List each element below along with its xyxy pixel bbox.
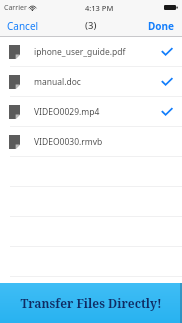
staticText: (3): [85, 19, 97, 32]
other: Selected: [162, 48, 172, 56]
staticText: 4:13 PM: [85, 3, 114, 13]
staticText: Transfer Files Directly!: [20, 295, 162, 311]
staticText: iphone_user_guide.pdf: [34, 46, 162, 58]
staticText: manual.doc: [34, 76, 162, 88]
button[interactable]: manual.doc: [0, 67, 182, 97]
other: Selected: [162, 108, 172, 116]
button[interactable]: VIDEO0029.mp4: [0, 97, 182, 127]
staticText: Done: [148, 19, 175, 33]
staticText: Carrier: [4, 3, 27, 13]
button[interactable]: Cancel: [0, 16, 46, 36]
button[interactable]: VIDEO0030.rmvb: [0, 127, 182, 157]
staticText: Cancel: [7, 19, 39, 33]
staticText: VIDEO0029.mp4: [34, 106, 162, 118]
button[interactable]: Done: [141, 16, 182, 36]
button[interactable]: iphone_user_guide.pdf: [0, 37, 182, 67]
other: Selected: [162, 78, 172, 86]
button[interactable]: Transfer Files Directly!: [0, 283, 182, 323]
staticText: VIDEO0030.rmvb: [34, 136, 172, 148]
